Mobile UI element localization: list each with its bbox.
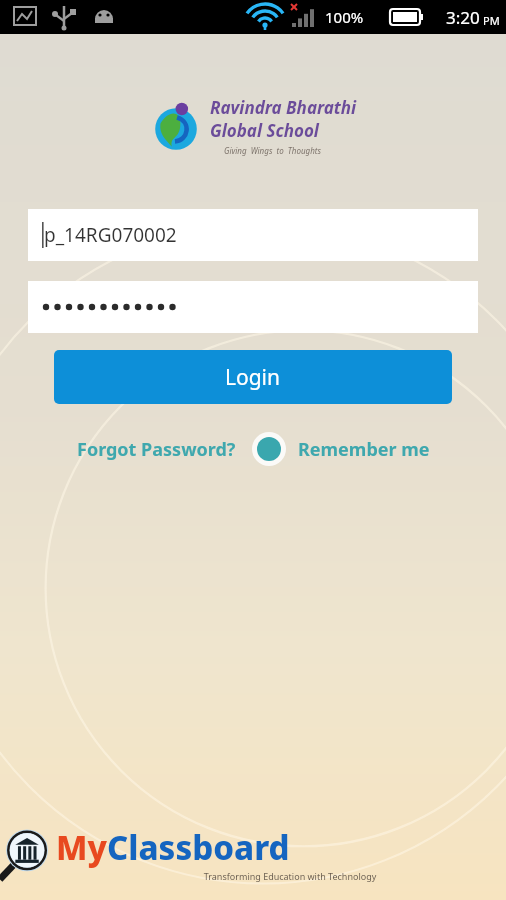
- button[interactable]: Remember me checkbox: [252, 432, 286, 466]
- staticText: PM: [483, 13, 500, 28]
- button[interactable]: [28, 281, 478, 333]
- button[interactable]: p_14RG070002: [28, 209, 478, 261]
- button[interactable]: Login: [54, 350, 452, 404]
- button[interactable]: Forgot Password?: [77, 433, 236, 466]
- staticText: Remember me: [298, 437, 430, 462]
- staticText: 3:20: [446, 6, 480, 29]
- staticText: Ravindra Bharathi: [210, 96, 357, 119]
- staticText: Login: [225, 363, 281, 392]
- staticText: My: [56, 825, 107, 870]
- staticText: Giving Wings to Thoughts: [224, 145, 321, 156]
- staticText: Classboard: [107, 825, 290, 870]
- staticText: p_14RG070002: [44, 222, 177, 248]
- staticText: Transforming Education with Technology: [74, 870, 506, 882]
- staticText: Forgot Password?: [77, 437, 236, 462]
- staticText: Global School: [210, 119, 319, 142]
- button[interactable]: Remember me: [298, 433, 430, 466]
- staticText: 100%: [325, 7, 364, 27]
